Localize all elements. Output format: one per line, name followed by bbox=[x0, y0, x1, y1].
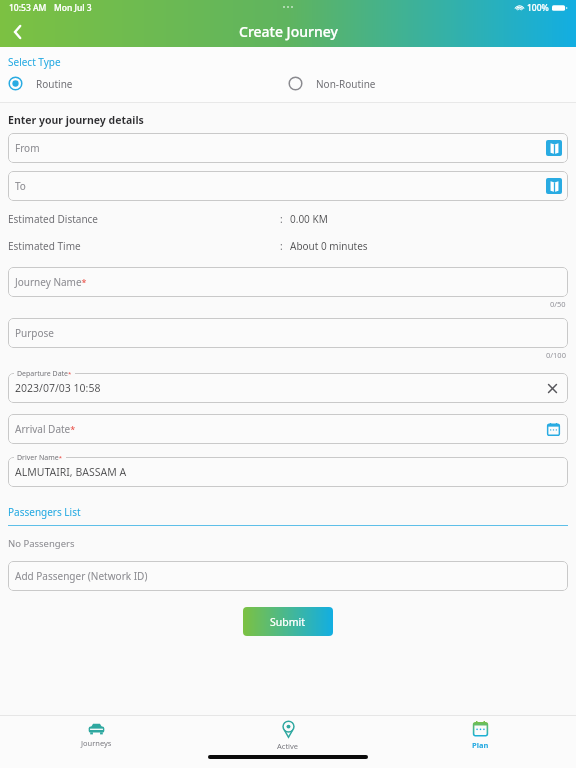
staticText: ALMUTAIRI, BASSAM A bbox=[15, 465, 127, 479]
button[interactable]: Non-Routine bbox=[288, 76, 576, 91]
staticText: 0/50 bbox=[550, 299, 566, 309]
staticText: Non-Routine bbox=[316, 77, 376, 91]
staticText: Submit bbox=[270, 615, 306, 629]
staticText: Create Journey bbox=[239, 22, 338, 41]
button[interactable]: ALMUTAIRI, BASSAM A bbox=[8, 457, 568, 487]
staticText: Journey Name* bbox=[15, 275, 87, 289]
staticText: Departure Date* bbox=[17, 369, 72, 379]
button[interactable]: Submit bbox=[243, 607, 333, 636]
staticText: Routine bbox=[36, 77, 73, 91]
staticText: To bbox=[15, 179, 26, 193]
staticText: Estimated Time bbox=[8, 239, 280, 253]
staticText: About 0 minutes bbox=[290, 239, 368, 253]
staticText: 100% bbox=[527, 2, 549, 14]
staticText: : bbox=[280, 212, 283, 226]
staticText: 0/100 bbox=[546, 350, 566, 360]
staticText: Journeys bbox=[81, 738, 112, 748]
staticText: Driver Name* bbox=[17, 453, 63, 463]
staticText: Add Passenger (Network ID) bbox=[15, 569, 148, 583]
staticText: No Passengers bbox=[8, 537, 75, 550]
button[interactable]: Active bbox=[192, 716, 384, 755]
staticText: Enter your journey details bbox=[8, 113, 144, 127]
button[interactable]: Clear bbox=[543, 379, 561, 397]
button[interactable]: Add Passenger (Network ID) bbox=[8, 561, 568, 591]
button[interactable]: To bbox=[8, 171, 568, 201]
staticText: 0.00 KM bbox=[290, 212, 328, 226]
button[interactable]: 2023/07/03 10:58 bbox=[8, 373, 568, 403]
button[interactable]: Journeys bbox=[0, 716, 192, 755]
staticText: Active bbox=[277, 741, 299, 751]
staticText: Arrival Date* bbox=[15, 422, 76, 436]
button[interactable]: Pick location bbox=[546, 140, 562, 156]
button[interactable]: Plan bbox=[384, 716, 576, 755]
button[interactable]: Journey Name* bbox=[8, 267, 568, 297]
staticText: 2023/07/03 10:58 bbox=[15, 381, 101, 395]
button[interactable]: Purpose bbox=[8, 318, 568, 348]
button[interactable]: Pick location bbox=[546, 178, 562, 194]
staticText: 10:53 AM bbox=[9, 2, 47, 14]
staticText: Passengers List bbox=[8, 505, 81, 519]
staticText: Mon Jul 3 bbox=[54, 2, 92, 14]
staticText: Select Type bbox=[8, 55, 61, 69]
staticText: Plan bbox=[472, 740, 489, 750]
button[interactable]: From bbox=[8, 133, 568, 163]
staticText: From bbox=[15, 141, 40, 155]
button[interactable]: Select date bbox=[544, 420, 562, 438]
button[interactable]: Arrival Date* bbox=[8, 414, 568, 444]
staticText: Estimated Distance bbox=[8, 212, 280, 226]
button[interactable]: Back bbox=[0, 16, 36, 47]
staticText: : bbox=[280, 239, 283, 253]
button[interactable]: Routine bbox=[8, 76, 288, 91]
staticText: Purpose bbox=[15, 326, 54, 340]
